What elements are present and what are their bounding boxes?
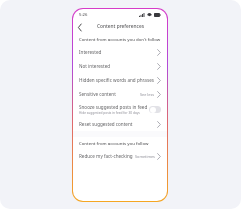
staticText: Reduce my fact-checking — [79, 153, 133, 159]
staticText: Content from accounts you don't follow — [79, 36, 161, 42]
staticText: Hide suggested posts in feed for 30 days — [79, 111, 140, 115]
other: Snooze suggested posts toggle — [149, 106, 161, 113]
staticText: Sensitive content — [79, 91, 116, 97]
staticText: Reset suggested content — [79, 121, 133, 127]
staticText: Sometimes — [135, 154, 155, 159]
button[interactable]: Snooze suggested posts in feed — [73, 101, 167, 117]
staticText: Content preferences — [97, 23, 144, 30]
button[interactable]: Reset suggested content — [73, 117, 167, 131]
staticText: See less — [140, 92, 155, 97]
button[interactable]: Reduce my fact-checking — [73, 149, 167, 163]
staticText: Hidden specific words and phrases — [79, 77, 154, 83]
staticText: 5:26 — [79, 12, 88, 18]
button[interactable]: Interested — [73, 45, 167, 59]
button[interactable]: Hidden specific words and phrases — [73, 73, 167, 87]
staticText: Content from accounts you follow — [79, 140, 149, 146]
button[interactable]: Not interested — [73, 59, 167, 73]
staticText: Interested — [79, 49, 102, 55]
button[interactable]: Sensitive content — [73, 87, 167, 101]
staticText: Snooze suggested posts in feed — [79, 104, 148, 110]
button[interactable]: Back — [75, 22, 85, 32]
staticText: Not interested — [79, 63, 111, 69]
